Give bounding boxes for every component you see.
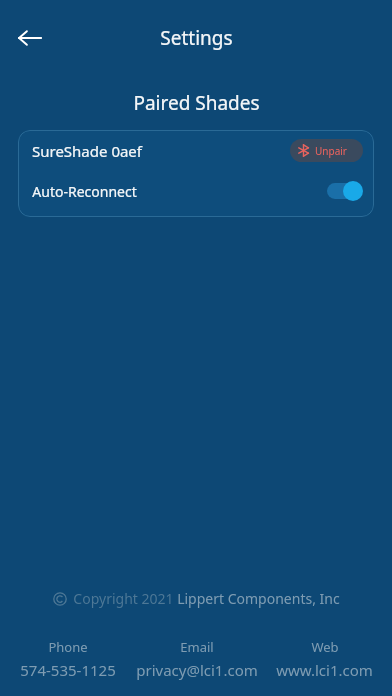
button[interactable]: Email: [128, 638, 265, 680]
button[interactable]: Web: [265, 638, 384, 680]
button[interactable]: Auto-Reconnect: [18, 171, 374, 211]
button[interactable]: Back: [6, 14, 54, 62]
staticText: SureShade 0aef: [32, 141, 142, 161]
button[interactable]: Auto-Reconnect toggle: [327, 180, 363, 202]
staticText: Unpair: [315, 144, 347, 158]
staticText: Paired Shades: [133, 90, 260, 116]
staticText: Phone: [48, 638, 88, 656]
staticText: Email: [180, 638, 214, 656]
button[interactable]: Phone: [8, 638, 128, 680]
staticText: privacy@lci1.com: [136, 660, 258, 680]
staticText: www.lci1.com: [276, 660, 373, 680]
button[interactable]: Unpair: [290, 139, 363, 162]
staticText: Settings: [160, 25, 233, 51]
staticText: 574-535-1125: [20, 660, 116, 680]
staticText: Auto-Reconnect: [32, 182, 137, 201]
staticText: Web: [311, 638, 339, 656]
staticText: Copyright 2021 Lippert Components, Inc: [73, 589, 340, 608]
button[interactable]: SureShade 0aef: [18, 130, 374, 171]
